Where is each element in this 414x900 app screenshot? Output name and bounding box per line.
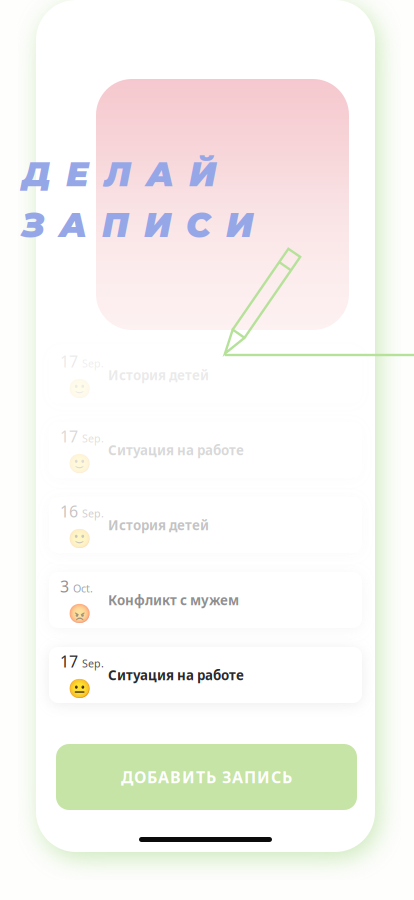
staticText: 16 (60, 501, 78, 522)
staticText: Ситуация на работе (108, 441, 244, 459)
staticText: 😐 (68, 678, 91, 699)
button[interactable]: ДОБАВИТЬ ЗАПИСЬ (56, 744, 357, 810)
staticText: Oct. (73, 581, 93, 595)
button[interactable]: 3 (49, 572, 362, 628)
button[interactable]: 17 (49, 647, 362, 703)
staticText: 😡 (68, 603, 91, 624)
staticText: ДОБАВИТЬ ЗАПИСЬ (121, 766, 292, 788)
button[interactable]: 17 (49, 347, 362, 403)
staticText: 17 (60, 426, 78, 447)
staticText: 17 (60, 651, 78, 672)
staticText: Конфликт с мужем (108, 591, 239, 609)
button[interactable]: 17 (49, 422, 362, 478)
staticText: История детей (108, 516, 209, 534)
staticText: 3 (60, 576, 69, 597)
staticText: Ситуация на работе (108, 666, 244, 684)
staticText: 🙂 (68, 453, 91, 474)
staticText: 🙂 (68, 528, 91, 549)
button[interactable]: 16 (49, 497, 362, 553)
staticText: ЗАПИСИ (22, 205, 253, 245)
staticText: ДЕЛАЙ (22, 154, 216, 195)
staticText: История детей (108, 366, 209, 384)
staticText: 🙂 (68, 378, 91, 399)
staticText: Sep. (82, 431, 104, 445)
staticText: Sep. (82, 356, 104, 370)
staticText: Sep. (82, 506, 104, 520)
staticText: 17 (60, 351, 78, 372)
staticText: Sep. (82, 656, 104, 670)
